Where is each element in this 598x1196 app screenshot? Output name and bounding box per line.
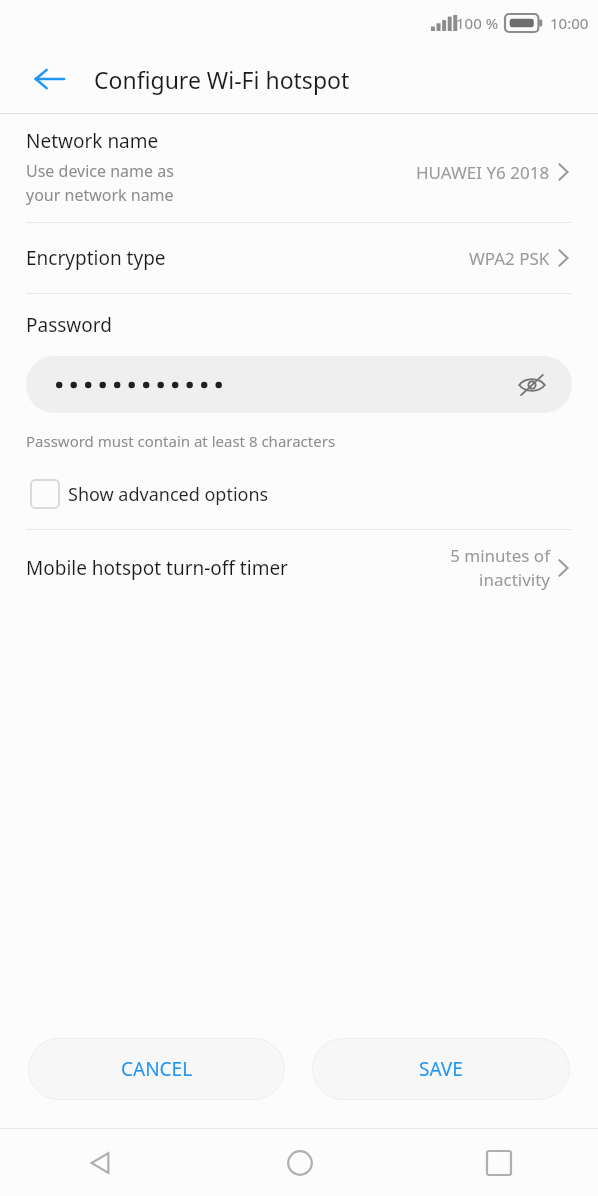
button[interactable]: Home — [200, 1129, 399, 1196]
staticText: Configure Wi-Fi hotspot — [94, 64, 350, 95]
staticText: SAVE — [419, 1056, 463, 1082]
staticText: HUAWEI Y6 2018 — [416, 161, 550, 184]
staticText: Encryption type — [26, 245, 469, 271]
staticText: Mobile hotspot turn-off timer — [26, 555, 424, 581]
staticText: Network name — [26, 128, 159, 154]
button[interactable]: CANCEL — [28, 1038, 285, 1100]
button[interactable]: Back — [22, 52, 76, 106]
button[interactable]: Network name — [0, 114, 598, 222]
button[interactable]: Show advanced options — [0, 475, 598, 529]
button[interactable]: Encryption type — [0, 223, 598, 293]
staticText: 10:00 — [550, 13, 589, 33]
button[interactable]: Recent apps — [399, 1129, 598, 1196]
button[interactable]: Back — [0, 1129, 200, 1196]
staticText: WPA2 PSK — [469, 247, 550, 270]
button[interactable]: SAVE — [312, 1038, 570, 1100]
button[interactable]: Show password — [26, 356, 572, 413]
button[interactable]: Show password — [510, 363, 554, 407]
staticText: CANCEL — [121, 1056, 193, 1082]
staticText: 100 % — [456, 13, 499, 33]
staticText: Show advanced options — [68, 482, 269, 507]
staticText: Password must contain at least 8 charact… — [26, 431, 336, 451]
staticText: 5 minutes of inactivity — [432, 544, 550, 591]
staticText: Use device name as your network name — [26, 160, 194, 206]
button[interactable]: Mobile hotspot turn-off timer — [0, 530, 598, 605]
staticText: Password — [26, 312, 112, 338]
